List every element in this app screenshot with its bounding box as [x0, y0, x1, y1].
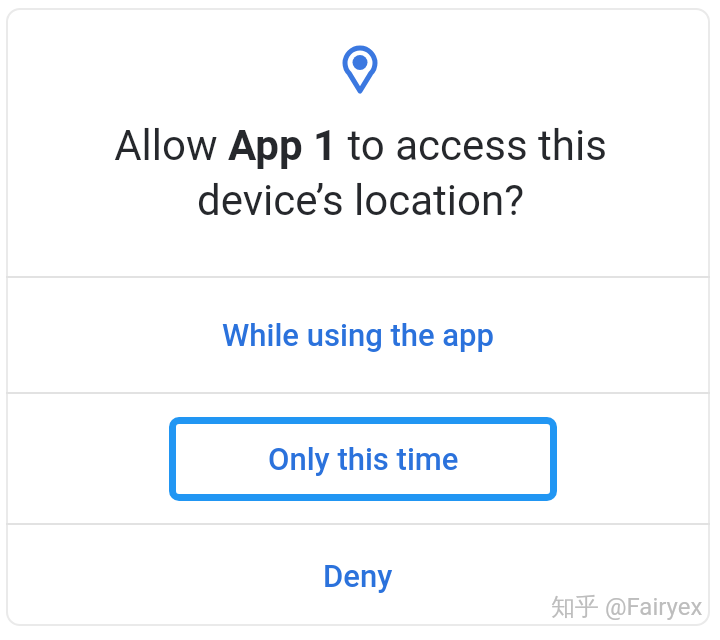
- staticText: Only this time: [268, 441, 459, 477]
- staticText: Allow App 1 to access this device’s loca…: [114, 121, 607, 225]
- staticText: Deny: [323, 558, 393, 594]
- staticText: 知乎 @Fairyex: [551, 592, 703, 622]
- button[interactable]: Only this time: [6, 394, 710, 523]
- button[interactable]: Deny: [6, 525, 710, 626]
- staticText: While using the app: [222, 317, 495, 353]
- button[interactable]: While using the app: [6, 278, 710, 392]
